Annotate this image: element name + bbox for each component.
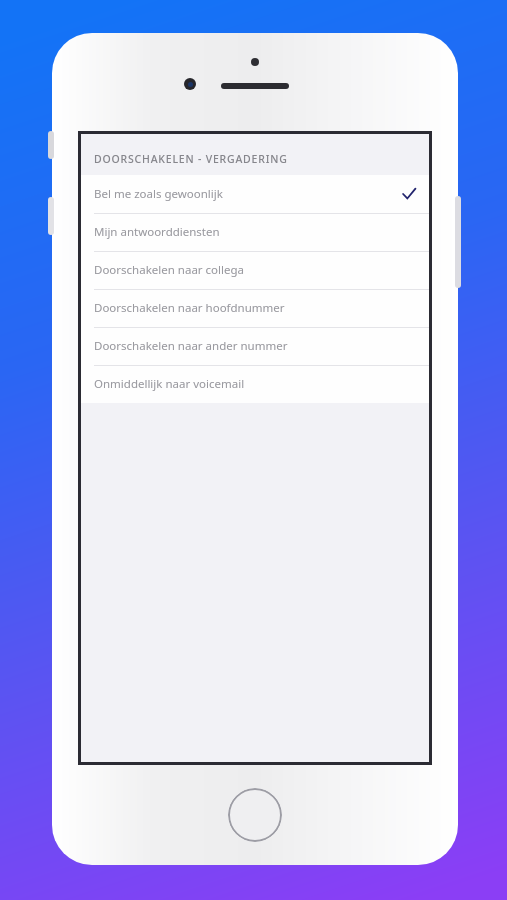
- staticText: Mijn antwoorddiensten: [94, 224, 220, 240]
- other: Volume up: [48, 131, 54, 159]
- button[interactable]: Home: [228, 788, 282, 842]
- staticText: Doorschakelen naar collega: [94, 262, 244, 278]
- button[interactable]: Onmiddellijk naar voicemail: [81, 365, 429, 403]
- staticText: Doorschakelen naar ander nummer: [94, 338, 288, 354]
- staticText: Onmiddellijk naar voicemail: [94, 376, 245, 392]
- staticText: Doorschakelen naar hoofdnummer: [94, 300, 285, 316]
- button[interactable]: Mijn antwoorddiensten: [81, 213, 429, 251]
- button[interactable]: Doorschakelen naar ander nummer: [81, 327, 429, 365]
- button[interactable]: Bel me zoals gewoonlijk: [81, 175, 429, 213]
- other: Power: [455, 196, 461, 288]
- staticText: DOORSCHAKELEN - VERGADERING: [94, 152, 288, 166]
- button[interactable]: Doorschakelen naar hoofdnummer: [81, 289, 429, 327]
- other: Volume down: [48, 197, 54, 235]
- button[interactable]: Doorschakelen naar collega: [81, 251, 429, 289]
- staticText: Bel me zoals gewoonlijk: [94, 186, 223, 202]
